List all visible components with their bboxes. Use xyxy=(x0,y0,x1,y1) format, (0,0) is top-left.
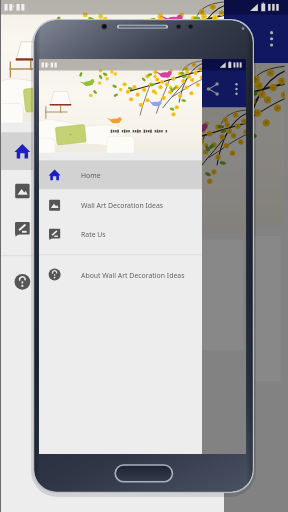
button[interactable]: Rate Us xyxy=(81,227,125,241)
staticText: Wall Art Decoration Ideas xyxy=(81,201,164,210)
button[interactable]: Home xyxy=(81,168,125,182)
staticText: Rate Us xyxy=(81,230,106,239)
staticText: About Wall Art Decoration Ideas xyxy=(81,271,185,280)
staticText: Home xyxy=(81,171,101,180)
button[interactable]: Wall Art Decoration Ideas xyxy=(81,198,202,212)
button[interactable]: About Wall Art Decoration Ideas xyxy=(81,268,202,282)
